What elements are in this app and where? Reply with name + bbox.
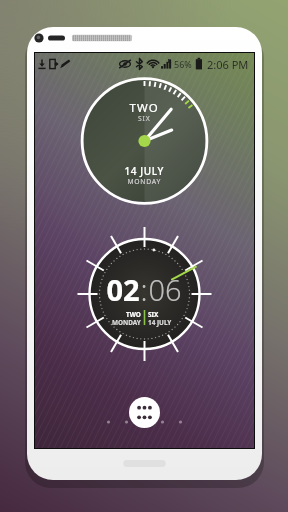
- button[interactable]: Apps: [129, 397, 160, 428]
